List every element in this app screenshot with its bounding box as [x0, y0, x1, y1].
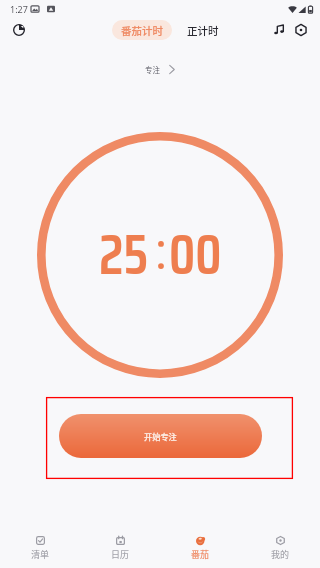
staticText: 1:27 — [10, 3, 28, 15]
staticText: 番茄计时 — [121, 23, 163, 38]
staticText: 番茄 — [191, 548, 210, 561]
button[interactable]: Settings — [289, 18, 313, 42]
button[interactable]: 正计时 — [183, 20, 222, 40]
button[interactable]: 清单 — [0, 516, 80, 568]
button[interactable]: 我的 — [240, 516, 320, 568]
staticText: 00 — [169, 212, 222, 299]
button[interactable]: 番茄计时 — [112, 20, 172, 40]
staticText: 我的 — [271, 548, 290, 561]
button[interactable]: 开始专注 — [59, 414, 262, 458]
staticText: 专注 — [145, 64, 160, 75]
staticText: 清单 — [31, 548, 50, 561]
staticText: 25 — [99, 212, 149, 299]
button[interactable]: 日历 — [80, 516, 160, 568]
button[interactable]: 专注 — [139, 59, 181, 79]
button[interactable]: Music — [267, 18, 291, 42]
staticText: 开始专注 — [144, 430, 177, 442]
staticText: 正计时 — [187, 23, 219, 38]
button[interactable]: Statistics — [7, 18, 31, 42]
button[interactable]: 番茄 — [160, 516, 240, 568]
staticText: 日历 — [111, 548, 130, 561]
